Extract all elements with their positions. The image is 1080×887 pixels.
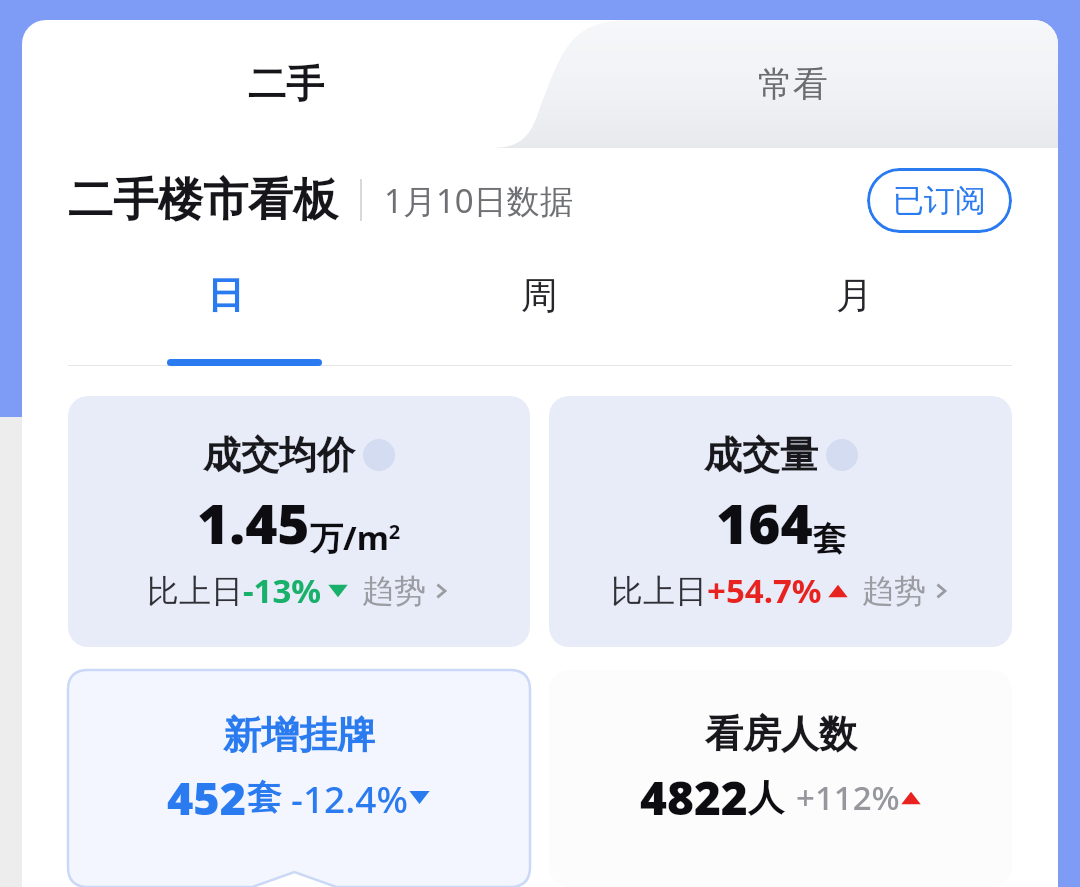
button[interactable]: 日 xyxy=(68,252,382,366)
button[interactable]: 成交均价 xyxy=(68,396,530,647)
button[interactable]: 已订阅 xyxy=(867,168,1012,233)
staticText: 套 xyxy=(813,518,846,560)
staticText: 二手楼市看板 xyxy=(68,172,338,229)
staticText: 1.45 xyxy=(197,485,310,560)
staticText: 164 xyxy=(716,485,813,560)
staticText: +112% xyxy=(796,775,900,820)
button[interactable]: 新增挂牌 xyxy=(68,670,530,887)
staticText: -13% xyxy=(243,568,322,613)
staticText: +54.7% xyxy=(707,568,822,613)
staticText: 新增挂牌 xyxy=(223,711,375,759)
staticText: 452 xyxy=(167,767,247,828)
staticText: -12.4% xyxy=(291,773,408,823)
button[interactable]: 成交量 xyxy=(549,396,1012,647)
staticText: 套 xyxy=(247,776,281,819)
staticText: 看房人数 xyxy=(705,710,857,758)
staticText: 趋势 xyxy=(362,571,426,611)
staticText: 比上日 xyxy=(611,571,707,611)
staticText: 周 xyxy=(521,272,558,319)
button[interactable]: 二手 xyxy=(218,44,354,124)
staticText: 已订阅 xyxy=(893,181,986,220)
staticText: 人 xyxy=(748,775,784,820)
staticText: 万/m2 xyxy=(310,515,401,560)
staticText: 趋势 xyxy=(862,571,926,611)
button[interactable]: 常看 xyxy=(728,46,858,122)
button[interactable]: 月 xyxy=(697,252,1012,366)
staticText: 成交均价 xyxy=(203,431,355,479)
other: 说明 xyxy=(826,439,858,471)
button[interactable]: 看房人数 xyxy=(549,670,1012,887)
staticText: 1月10日数据 xyxy=(384,178,573,223)
staticText: 比上日 xyxy=(147,571,243,611)
staticText: 常看 xyxy=(758,62,828,106)
staticText: 二手 xyxy=(248,60,324,108)
other: 说明 xyxy=(363,439,395,471)
staticText: 成交量 xyxy=(704,431,818,479)
button[interactable]: 周 xyxy=(382,252,697,366)
staticText: 4822 xyxy=(640,766,748,829)
staticText: 日 xyxy=(207,272,244,319)
staticText: 月 xyxy=(836,272,873,319)
